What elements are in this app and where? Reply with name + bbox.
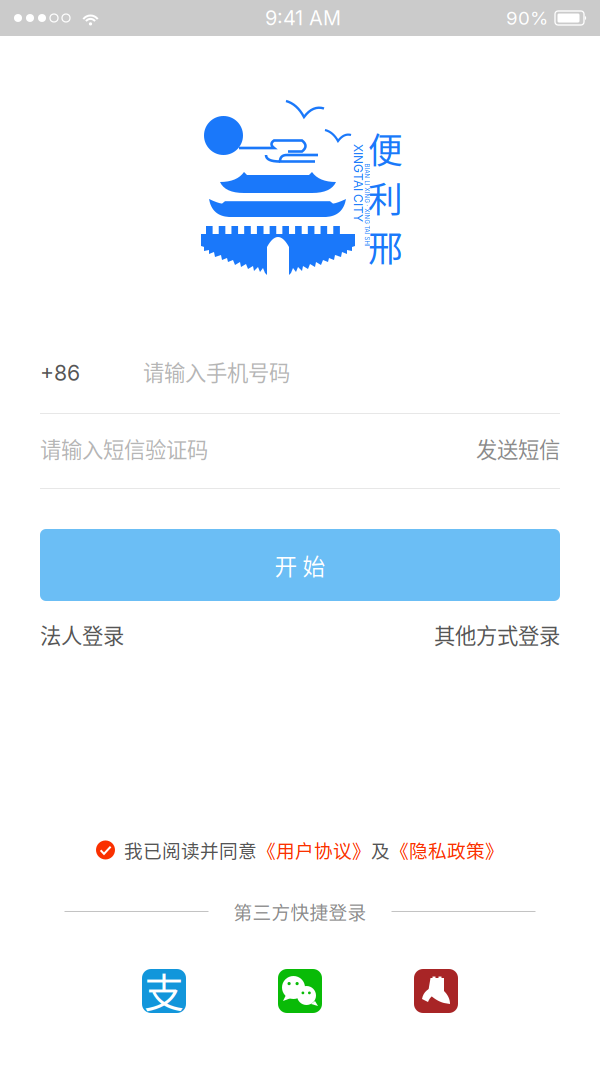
button[interactable]: 其他方式登录 [434, 619, 560, 650]
staticText: 其他方式登录 [434, 619, 560, 650]
staticText: 开 始 [274, 549, 325, 581]
staticText: 《用户协议》 [257, 836, 371, 863]
staticText: 《隐私政策》 [390, 836, 504, 863]
staticText: 邢 [368, 221, 403, 272]
staticText: 我已阅读并同意 [124, 836, 257, 863]
staticText: 便 [368, 123, 403, 173]
button[interactable]: WeChat login [278, 969, 322, 1013]
staticText: 90% [506, 7, 548, 29]
button[interactable]: 发送短信 [476, 433, 560, 464]
staticText: 第三方快捷登录 [233, 898, 366, 925]
button[interactable]: Jishiban login [414, 969, 458, 1013]
staticText: XINGTAI CITY [319, 176, 397, 190]
button[interactable]: 法人登录 [40, 619, 124, 650]
staticText: +86 [40, 360, 80, 386]
button[interactable]: Alipay login [142, 969, 186, 1013]
button[interactable]: 我已阅读并同意 [96, 835, 504, 865]
staticText: 请输入短信验证码 [40, 433, 208, 464]
staticText: 请输入手机号码 [143, 356, 290, 387]
staticText: 发送短信 [476, 433, 560, 464]
staticText: 9:41 AM [265, 6, 341, 30]
staticText: BIAN LI XING · XING TAI SHI [325, 201, 408, 209]
staticText: 法人登录 [40, 619, 124, 650]
staticText: 及 [371, 836, 390, 863]
button[interactable]: 开 始 [40, 529, 560, 601]
staticText: 利 [368, 172, 403, 222]
staticText: 支 [144, 961, 184, 1019]
